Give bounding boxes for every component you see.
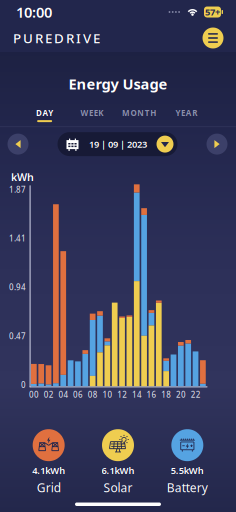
staticText: 0.94 bbox=[9, 282, 26, 293]
staticText: 14 bbox=[132, 389, 142, 400]
button[interactable]: 4.1kWh bbox=[14, 429, 83, 495]
staticText: Battery bbox=[167, 480, 208, 495]
staticText: 00 bbox=[29, 389, 39, 400]
staticText: 5.5kWh bbox=[171, 464, 204, 477]
staticText: 57+ bbox=[205, 6, 220, 18]
staticText: 10 bbox=[102, 389, 112, 400]
staticText: kWh bbox=[11, 170, 34, 184]
staticText: Energy Usage bbox=[68, 74, 167, 93]
button[interactable]: Menu bbox=[200, 25, 226, 51]
staticText: 22 bbox=[191, 389, 201, 400]
button[interactable]: Next day bbox=[205, 132, 229, 156]
staticText: 19 | 09 | 2023 bbox=[89, 138, 147, 150]
staticText: 4.1kWh bbox=[32, 464, 65, 477]
button[interactable]: WEEK bbox=[68, 107, 115, 122]
staticText: 18 bbox=[161, 389, 171, 400]
staticText: 0.47 bbox=[9, 331, 26, 341]
staticText: 20 bbox=[176, 389, 186, 400]
staticText: 12 bbox=[117, 389, 127, 400]
staticText: 08 bbox=[88, 389, 98, 400]
staticText: 04 bbox=[58, 389, 68, 400]
staticText: WEEK bbox=[80, 107, 103, 118]
button[interactable]: Previous day bbox=[6, 132, 30, 156]
staticText: YEAR bbox=[175, 107, 197, 118]
button[interactable]: YEAR bbox=[163, 107, 210, 122]
staticText: 1.41 bbox=[9, 233, 26, 244]
staticText: 06 bbox=[73, 389, 83, 400]
button[interactable]: 5.5kWh bbox=[153, 429, 222, 495]
staticText: 02 bbox=[44, 389, 54, 400]
staticText: 6.1kWh bbox=[101, 464, 134, 477]
staticText: MONTH bbox=[122, 107, 156, 118]
button[interactable]: 6.1kWh bbox=[83, 429, 153, 495]
staticText: 10:00 bbox=[16, 2, 52, 22]
staticText: Grid bbox=[37, 480, 61, 495]
staticText: DAY bbox=[36, 107, 53, 118]
staticText: 1.87 bbox=[9, 184, 26, 195]
button[interactable]: MONTH bbox=[115, 107, 163, 122]
staticText: 16 bbox=[147, 389, 157, 400]
button[interactable]: DAY bbox=[21, 107, 68, 122]
staticText: PUREDRIVE bbox=[13, 29, 100, 47]
button[interactable]: Select date bbox=[57, 132, 177, 156]
staticText: 0 bbox=[21, 380, 26, 390]
staticText: Solar bbox=[103, 480, 132, 495]
